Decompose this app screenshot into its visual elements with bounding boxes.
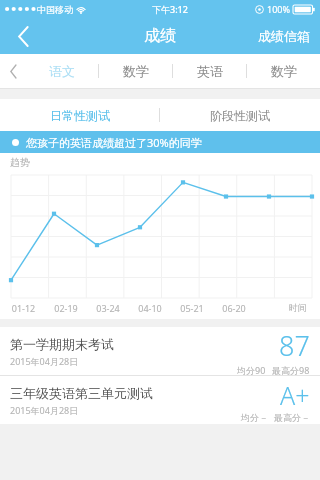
staticText: A+ bbox=[280, 378, 310, 412]
staticText: 英语 bbox=[197, 63, 223, 79]
button[interactable]: 成绩信箱 bbox=[248, 18, 320, 54]
staticText: 2015年04月28日 bbox=[10, 355, 79, 367]
staticText: 日常性测试 bbox=[50, 108, 110, 123]
staticText: 成绩 bbox=[144, 26, 176, 46]
staticText: 中国移动 bbox=[37, 4, 73, 15]
staticText: 数学 bbox=[123, 63, 149, 79]
staticText: 最高分－ bbox=[274, 412, 310, 423]
staticText: 05-21 bbox=[171, 302, 213, 314]
staticText: 2015年04月28日 bbox=[10, 404, 79, 416]
staticText: 100% bbox=[267, 3, 290, 15]
staticText: 趋势 bbox=[10, 156, 30, 169]
button[interactable]: 英语 bbox=[173, 54, 246, 88]
button[interactable]: 三年级英语第三单元测试 bbox=[0, 376, 320, 424]
button[interactable]: 语文 bbox=[26, 54, 98, 88]
staticText: 02-19 bbox=[45, 302, 87, 314]
staticText: 语文 bbox=[49, 63, 75, 79]
staticText: 06-20 bbox=[213, 302, 255, 314]
button[interactable]: Back bbox=[0, 18, 46, 54]
staticText: 均分－ bbox=[241, 412, 268, 423]
staticText: 03-24 bbox=[87, 302, 129, 314]
staticText: 您孩子的英语成绩超过了30%的同学 bbox=[26, 135, 202, 150]
button[interactable]: Previous subject bbox=[0, 54, 26, 88]
staticText: 04-10 bbox=[129, 302, 171, 314]
staticText: 三年级英语第三单元测试 bbox=[10, 385, 153, 401]
staticText: 01-12 bbox=[2, 302, 45, 314]
staticText: 数学 bbox=[271, 63, 297, 79]
staticText: 阶段性测试 bbox=[210, 108, 270, 123]
staticText: 时间 bbox=[280, 302, 316, 313]
staticText: 均分90 bbox=[237, 364, 266, 375]
button[interactable]: 数学 bbox=[99, 54, 172, 88]
button[interactable]: 日常性测试 bbox=[0, 99, 159, 131]
staticText: 87 bbox=[279, 327, 310, 364]
button[interactable]: 阶段性测试 bbox=[160, 99, 320, 131]
staticText: 成绩信箱 bbox=[258, 28, 310, 44]
staticText: 第一学期期末考试 bbox=[10, 336, 114, 352]
button[interactable]: 数学 bbox=[247, 54, 320, 88]
button[interactable]: 第一学期期末考试 bbox=[0, 327, 320, 375]
staticText: 下午3:12 bbox=[152, 3, 188, 15]
staticText: 最高分98 bbox=[272, 364, 310, 375]
